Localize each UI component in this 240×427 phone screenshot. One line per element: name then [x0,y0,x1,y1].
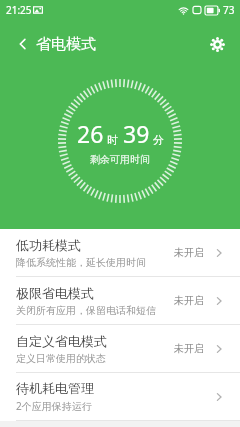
button[interactable]: 自定义省电模式 [0,325,240,372]
button[interactable]: 低功耗模式 [0,229,240,276]
staticText: 39 [123,118,150,149]
staticText: 73 [223,3,235,17]
button[interactable]: 极限省电模式 [0,277,240,324]
staticText: 定义日常使用的状态 [16,352,106,365]
button[interactable]: 待机耗电管理 [0,373,240,420]
staticText: 自定义省电模式 [16,333,107,349]
staticText: 关闭所有应用，保留电话和短信 [16,304,156,317]
staticText: 省电模式 [36,35,96,54]
staticText: 极限省电模式 [16,285,94,301]
staticText: 低功耗模式 [16,237,81,253]
staticText: 未开启 [174,294,204,307]
staticText: 26 [77,118,104,149]
staticText: 剩余可用时间 [90,153,150,166]
button[interactable]: Back [8,29,38,59]
staticText: 未开启 [174,246,204,259]
staticText: 2个应用保持运行 [16,399,92,413]
staticText: 待机耗电管理 [16,380,94,396]
staticText: 降低系统性能，延长使用时间 [16,256,146,269]
staticText: 分 [153,133,164,147]
staticText: 未开启 [174,342,204,355]
button[interactable]: Settings [202,29,232,59]
staticText: 时 [107,133,118,147]
staticText: 21:25 [6,3,32,17]
